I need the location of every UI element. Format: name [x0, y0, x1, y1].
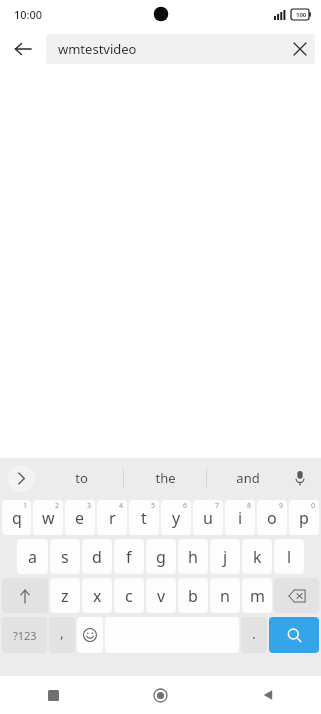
button[interactable]: Search — [269, 617, 319, 653]
button[interactable]: e — [65, 500, 95, 535]
staticText: c — [125, 585, 133, 607]
staticText: g — [156, 546, 166, 568]
staticText: to — [75, 469, 88, 487]
button[interactable]: Clear — [285, 34, 315, 64]
button[interactable]: Shift — [2, 578, 48, 613]
button[interactable]: wmtestvideo — [46, 34, 315, 64]
button[interactable]: d — [82, 539, 112, 574]
button[interactable]: Recents — [0, 676, 107, 714]
staticText: 2 — [55, 501, 60, 511]
button[interactable]: w — [33, 500, 63, 535]
staticText: 3 — [87, 501, 92, 511]
staticText: i — [238, 507, 243, 529]
staticText: the — [155, 469, 176, 487]
button[interactable]: k — [242, 539, 272, 574]
button[interactable]: h — [178, 539, 208, 574]
staticText: l — [287, 546, 292, 568]
button[interactable]: j — [210, 539, 240, 574]
button[interactable]: q — [2, 500, 31, 535]
button[interactable]: Backspace — [274, 578, 319, 613]
button[interactable]: f — [114, 539, 144, 574]
button[interactable]: the — [124, 458, 206, 498]
staticText: and — [236, 469, 260, 487]
staticText: 5 — [151, 501, 156, 511]
button[interactable]: . — [241, 617, 267, 653]
staticText: 6 — [183, 501, 188, 511]
staticText: 1 — [23, 501, 28, 511]
staticText: t — [141, 507, 147, 529]
staticText: 7 — [215, 501, 220, 511]
staticText: j — [223, 546, 228, 568]
button[interactable]: l — [274, 539, 304, 574]
staticText: 10:00 — [14, 7, 43, 22]
staticText: h — [188, 546, 198, 568]
button[interactable]: z — [50, 578, 80, 613]
staticText: w — [42, 507, 55, 529]
button[interactable]: and — [207, 458, 289, 498]
button[interactable]: Voice input — [285, 463, 315, 493]
staticText: ?123 — [13, 628, 37, 643]
staticText: q — [12, 507, 22, 529]
button[interactable]: Back — [6, 32, 40, 66]
staticText: o — [267, 507, 277, 529]
staticText: k — [253, 546, 262, 568]
staticText: r — [109, 507, 116, 529]
button[interactable]: x — [82, 578, 112, 613]
staticText: 100 — [296, 11, 307, 19]
button[interactable]: i — [225, 500, 255, 535]
staticText: v — [157, 585, 166, 607]
button[interactable]: u — [193, 500, 223, 535]
button[interactable]: ?123 — [2, 617, 47, 653]
staticText: , — [60, 623, 64, 642]
staticText: 8 — [247, 501, 252, 511]
button[interactable]: b — [178, 578, 208, 613]
staticText: 4 — [119, 501, 124, 511]
staticText: . — [252, 624, 256, 643]
button[interactable]: Home — [107, 676, 214, 714]
staticText: x — [93, 585, 102, 607]
button[interactable]: m — [242, 578, 272, 613]
staticText: b — [188, 585, 198, 607]
staticText: u — [203, 507, 213, 529]
button[interactable]: c — [114, 578, 144, 613]
button[interactable]: n — [210, 578, 240, 613]
staticText: a — [28, 546, 37, 568]
button[interactable]: g — [146, 539, 176, 574]
staticText: f — [126, 546, 132, 568]
button[interactable]: v — [146, 578, 176, 613]
staticText: n — [220, 585, 230, 607]
button[interactable]: a — [17, 539, 48, 574]
button[interactable]: Emoji — [77, 617, 103, 653]
button[interactable]: Back — [214, 676, 321, 714]
staticText: 0 — [311, 501, 316, 511]
button[interactable]: r — [97, 500, 127, 535]
button[interactable]: y — [161, 500, 191, 535]
staticText: m — [250, 585, 265, 607]
button[interactable]: s — [50, 539, 80, 574]
button[interactable]: o — [257, 500, 287, 535]
button[interactable]: p — [289, 500, 319, 535]
button[interactable]: More suggestions — [8, 465, 35, 492]
button[interactable]: , — [49, 617, 75, 653]
staticText: p — [299, 507, 309, 529]
staticText: d — [92, 546, 102, 568]
staticText: z — [61, 585, 69, 607]
staticText: y — [172, 507, 181, 529]
staticText: e — [75, 507, 85, 529]
staticText: 9 — [279, 501, 284, 511]
button[interactable]: to — [40, 458, 123, 498]
button[interactable]: t — [129, 500, 159, 535]
staticText: wmtestvideo — [58, 40, 285, 58]
staticText: s — [61, 546, 69, 568]
